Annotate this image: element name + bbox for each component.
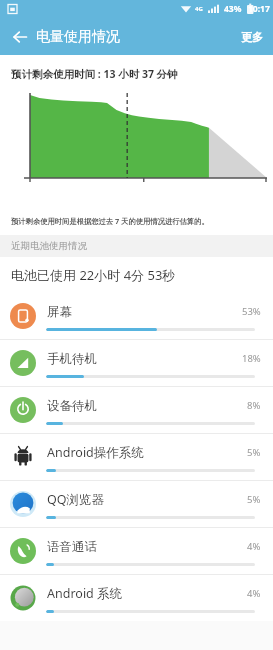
staticText: 18% xyxy=(242,352,261,365)
staticText: 10:17 xyxy=(248,3,270,15)
button[interactable]: 手机待机 xyxy=(0,339,273,386)
button[interactable]: 屏幕 xyxy=(0,293,273,339)
staticText: 电池已使用 22小时 4分 53秒 xyxy=(11,266,176,284)
staticText: 5% xyxy=(247,446,261,459)
staticText: 53% xyxy=(242,305,261,318)
staticText: 屏幕 xyxy=(47,304,72,320)
button[interactable]: 设备待机 xyxy=(0,386,273,433)
button[interactable]: 更多 xyxy=(231,18,273,55)
staticText: QQ浏览器 xyxy=(47,491,105,508)
staticText: 4% xyxy=(247,540,261,553)
button[interactable]: QQ浏览器 xyxy=(0,480,273,527)
staticText: 8% xyxy=(247,399,261,412)
staticText: 更多 xyxy=(241,30,263,44)
staticText: 4% xyxy=(247,587,261,600)
staticText: 5% xyxy=(247,493,261,506)
staticText: 手机待机 xyxy=(47,351,97,367)
staticText: 语音通话 xyxy=(47,539,97,555)
button[interactable]: Back xyxy=(5,22,35,52)
staticText: 43% xyxy=(224,3,242,15)
staticText: 预计剩余使用时间是根据您过去 7 天的使用情况进行估算的。 xyxy=(11,216,209,226)
button[interactable]: Android操作系统 xyxy=(0,433,273,480)
button[interactable]: 语音通话 xyxy=(0,527,273,574)
staticText: 4G xyxy=(195,5,203,13)
button[interactable]: Android 系统 xyxy=(0,574,273,621)
staticText: 近期电池使用情况 xyxy=(11,240,87,252)
staticText: 电量使用情况 xyxy=(36,28,120,46)
staticText: Android操作系统 xyxy=(47,444,144,461)
staticText: 预计剩余使用时间 : 13 小时 37 分钟 xyxy=(11,67,178,81)
staticText: 设备待机 xyxy=(47,398,97,414)
staticText: Android 系统 xyxy=(47,585,123,602)
